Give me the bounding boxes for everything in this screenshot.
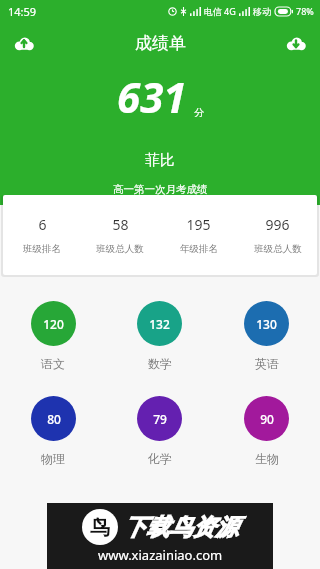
staticText: 132: [149, 316, 170, 332]
button[interactable]: 120: [0, 301, 106, 371]
staticText: 4G: [224, 5, 236, 17]
staticText: 195: [186, 215, 211, 234]
button[interactable]: 79: [106, 396, 213, 466]
staticText: 90: [260, 411, 274, 427]
staticText: 化学: [148, 451, 172, 466]
button[interactable]: 80: [0, 396, 106, 466]
staticText: 移动: [253, 6, 271, 17]
button[interactable]: 58: [81, 195, 159, 275]
staticText: 6: [38, 215, 47, 234]
button[interactable]: 90: [213, 396, 320, 466]
button[interactable]: Upload: [4, 23, 44, 63]
staticText: 130: [256, 316, 277, 332]
staticText: 鸟: [90, 515, 110, 540]
staticText: 班级总人数: [96, 243, 144, 255]
staticText: 菲比: [145, 151, 175, 170]
staticText: 班级排名: [23, 243, 61, 255]
button[interactable]: 996: [238, 195, 317, 275]
staticText: 成绩单: [135, 33, 186, 54]
staticText: 生物: [255, 451, 279, 466]
staticText: 数学: [148, 356, 172, 371]
staticText: 996: [265, 215, 290, 234]
staticText: 80: [47, 411, 61, 427]
staticText: 631: [117, 68, 187, 125]
staticText: 电信: [204, 6, 222, 17]
button[interactable]: Download: [276, 23, 316, 63]
staticText: 58: [112, 215, 129, 234]
staticText: 年级排名: [180, 243, 218, 255]
staticText: 语文: [41, 356, 65, 371]
staticText: 14:59: [8, 4, 37, 19]
staticText: 物理: [41, 451, 65, 466]
button[interactable]: 132: [106, 301, 213, 371]
staticText: 班级总人数: [254, 243, 302, 255]
staticText: www.xiazainiao.com: [98, 546, 223, 564]
staticText: 英语: [255, 356, 279, 371]
button[interactable]: 195: [159, 195, 238, 275]
staticText: 高一第一次月考成绩: [113, 183, 208, 196]
staticText: 120: [43, 316, 64, 332]
staticText: 分: [194, 106, 204, 119]
button[interactable]: 130: [213, 301, 320, 371]
staticText: 下载鸟资源: [123, 513, 238, 542]
staticText: 78%: [296, 5, 314, 17]
button[interactable]: 6: [3, 195, 81, 275]
staticText: 79: [153, 411, 167, 427]
